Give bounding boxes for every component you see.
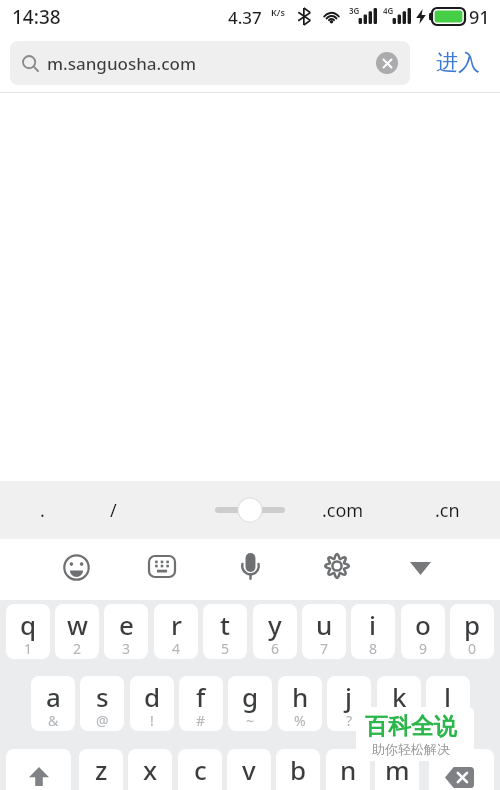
button[interactable]: r	[154, 604, 198, 659]
staticText: ~	[246, 711, 255, 730]
button[interactable]: a	[31, 676, 75, 731]
staticText: b	[290, 752, 307, 787]
staticText: l	[444, 679, 452, 714]
button[interactable]: c	[178, 749, 222, 790]
staticText: !	[150, 711, 154, 730]
staticText: 2	[73, 639, 82, 658]
staticText: /	[110, 498, 117, 523]
staticText: u	[316, 607, 333, 642]
staticText: .com	[322, 498, 364, 523]
button[interactable]	[376, 52, 398, 74]
staticText: 4	[172, 639, 181, 658]
button[interactable]: j	[327, 676, 371, 731]
staticText: &	[48, 711, 59, 730]
button[interactable]	[202, 481, 298, 539]
button[interactable]: h	[278, 676, 322, 731]
staticText: 3G	[349, 5, 360, 16]
staticText: K/s	[271, 6, 285, 18]
button[interactable]: .com	[308, 481, 378, 539]
staticText: m.sanguosha.com	[47, 52, 197, 75]
staticText: s	[96, 679, 109, 714]
staticText: 4G	[383, 5, 394, 16]
button[interactable]	[54, 545, 98, 589]
staticText: 7	[320, 639, 329, 658]
staticText: 4.37	[228, 6, 262, 29]
staticText: 91	[469, 5, 490, 30]
button[interactable]: p	[450, 604, 494, 659]
staticText: 0	[468, 639, 477, 658]
button[interactable]: e	[104, 604, 148, 659]
button[interactable]: o	[401, 604, 445, 659]
button[interactable]	[140, 544, 184, 588]
button[interactable]: z	[79, 749, 123, 790]
staticText: d	[144, 679, 161, 714]
staticText: 1	[24, 639, 33, 658]
button[interactable]	[429, 749, 494, 790]
staticText: 6	[271, 639, 280, 658]
staticText: m	[385, 752, 410, 787]
staticText: g	[242, 679, 259, 714]
staticText: r	[171, 607, 182, 642]
staticText: ?	[346, 711, 353, 730]
button[interactable]: w	[55, 604, 99, 659]
button[interactable]: m.sanguosha.com	[10, 41, 410, 85]
staticText: t	[220, 607, 230, 642]
button[interactable]: t	[203, 604, 247, 659]
button[interactable]: u	[302, 604, 346, 659]
button[interactable]: x	[128, 749, 172, 790]
staticText: 14:38	[12, 4, 61, 30]
staticText: i	[369, 607, 377, 642]
staticText: 8	[369, 639, 378, 658]
staticText: )	[446, 711, 451, 730]
button[interactable]	[6, 749, 71, 790]
button[interactable]: m	[375, 749, 419, 790]
staticText: e	[119, 607, 134, 642]
button[interactable]	[315, 544, 359, 588]
staticText: o	[415, 607, 431, 642]
button[interactable]: f	[179, 676, 223, 731]
button[interactable]: l	[426, 676, 470, 731]
button[interactable]: .	[14, 481, 70, 539]
button[interactable]	[228, 544, 272, 588]
staticText: (	[397, 711, 402, 730]
staticText: y	[268, 607, 282, 642]
button[interactable]: g	[228, 676, 272, 731]
button[interactable]: d	[130, 676, 174, 731]
button[interactable]: i	[351, 604, 395, 659]
staticText: n	[340, 752, 357, 787]
staticText: 9	[419, 639, 428, 658]
button[interactable]	[398, 546, 442, 590]
staticText: h	[292, 679, 309, 714]
staticText: v	[242, 752, 256, 787]
staticText: j	[345, 679, 353, 714]
staticText: f	[196, 679, 206, 714]
staticText: #	[196, 711, 206, 730]
staticText: w	[67, 607, 88, 642]
staticText: a	[46, 679, 61, 714]
staticText: .	[40, 498, 45, 523]
button[interactable]: k	[377, 676, 421, 731]
staticText: 百科全说	[365, 712, 457, 741]
button[interactable]: n	[326, 749, 370, 790]
staticText: 3	[122, 639, 131, 658]
button[interactable]: /	[85, 481, 141, 539]
staticText: x	[143, 752, 158, 787]
button[interactable]: q	[6, 604, 50, 659]
staticText: 进入	[436, 49, 480, 77]
staticText: q	[20, 607, 37, 642]
staticText: z	[95, 752, 108, 787]
staticText: k	[392, 679, 407, 714]
staticText: .cn	[435, 498, 460, 523]
staticText: p	[464, 607, 481, 642]
button[interactable]: v	[227, 749, 271, 790]
staticText: c	[194, 752, 207, 787]
staticText: @	[96, 711, 109, 730]
button[interactable]: b	[276, 749, 320, 790]
button[interactable]: .cn	[417, 481, 477, 539]
staticText: %	[294, 711, 306, 730]
button[interactable]: 进入	[430, 43, 486, 83]
staticText: 5	[221, 639, 230, 658]
staticText: 助你轻松解决	[372, 741, 450, 757]
button[interactable]: y	[253, 604, 297, 659]
button[interactable]: s	[80, 676, 124, 731]
